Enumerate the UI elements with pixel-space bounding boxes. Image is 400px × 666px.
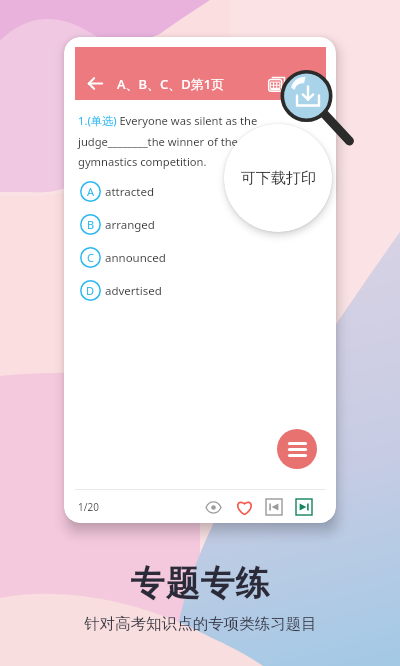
staticText: arranged xyxy=(105,217,155,233)
staticText: 针对高考知识点的专项类练习题目 xyxy=(84,614,317,634)
button[interactable]: C xyxy=(75,241,326,274)
staticText: A、B、C、D第1页 xyxy=(117,75,225,93)
button[interactable]: Back xyxy=(88,76,103,91)
staticText: D xyxy=(86,283,95,298)
button[interactable]: B xyxy=(75,208,326,241)
button[interactable]: Favorite xyxy=(233,496,255,518)
staticText: 专题专练 xyxy=(130,562,270,605)
staticText: 1.(单选) Everyone was silent as the judge_… xyxy=(78,113,258,169)
button[interactable]: Preview answer xyxy=(202,496,224,518)
staticText: A xyxy=(87,184,95,199)
staticText: 1/20 xyxy=(78,500,99,514)
button[interactable]: Menu xyxy=(277,429,317,469)
staticText: announced xyxy=(105,250,166,266)
staticText: 可下载打印 xyxy=(241,169,316,188)
staticText: B xyxy=(87,217,95,232)
staticText: C xyxy=(87,250,94,265)
button[interactable]: Card list xyxy=(268,75,285,92)
button[interactable]: Previous xyxy=(266,499,282,515)
button[interactable]: D xyxy=(75,274,326,307)
staticText: attracted xyxy=(105,184,154,200)
button[interactable]: Next xyxy=(296,499,312,515)
button[interactable]: A xyxy=(75,175,326,208)
staticText: advertised xyxy=(105,283,162,299)
button[interactable]: Download xyxy=(279,68,335,124)
